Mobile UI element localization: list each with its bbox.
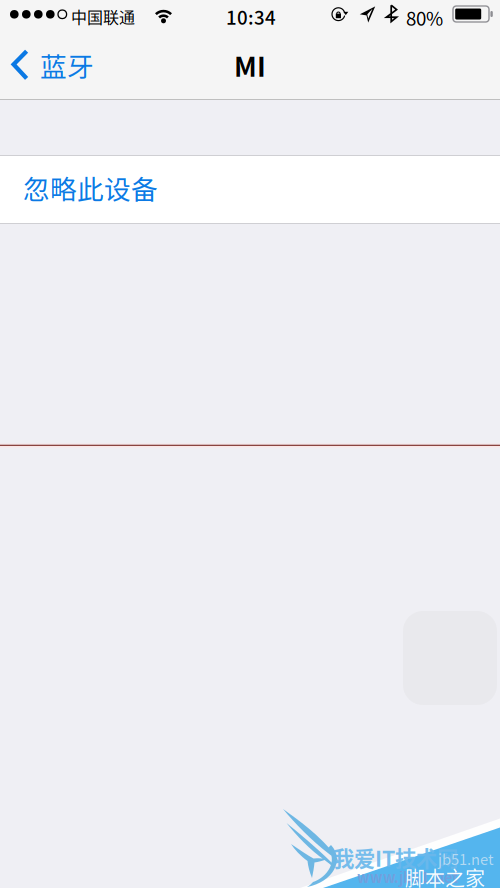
staticText: jb51.net	[438, 848, 494, 869]
staticText: 10:34	[226, 3, 276, 30]
button[interactable]: 忽略此设备	[0, 156, 500, 223]
staticText: 80%	[406, 4, 443, 31]
button[interactable]: 蓝牙	[0, 31, 105, 99]
staticText: www.jb51.net	[357, 866, 458, 887]
staticText: 忽略此设备	[23, 168, 158, 207]
staticText: 蓝牙	[40, 46, 94, 84]
staticText: 脚本之家	[405, 863, 485, 888]
staticText: 中国联通	[71, 5, 135, 28]
staticText: 我爱IT技术网	[333, 842, 458, 873]
staticText: MI	[234, 46, 266, 84]
